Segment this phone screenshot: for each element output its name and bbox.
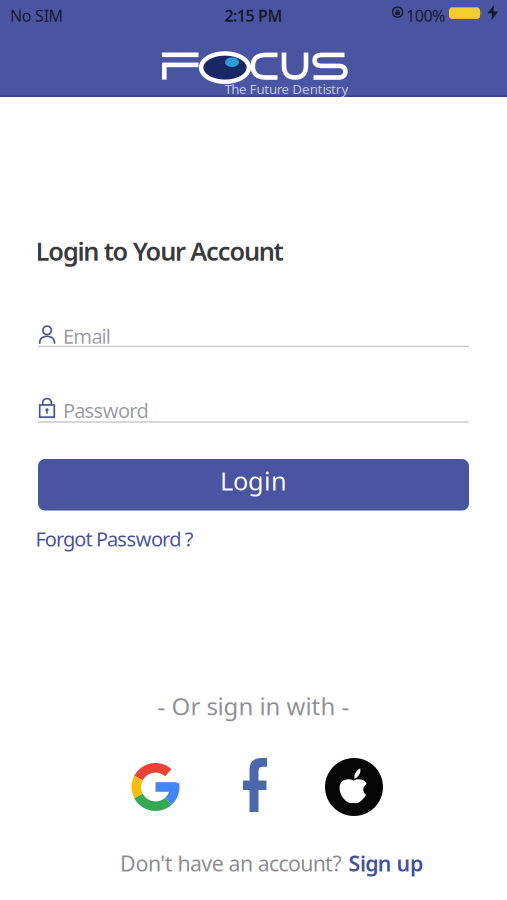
staticText: No SIM (10, 5, 63, 26)
staticText: The Future Dentistry (224, 80, 349, 98)
button[interactable]: Login (38, 459, 469, 510)
staticText: 100% (406, 5, 445, 26)
button[interactable]: Email (38, 317, 469, 346)
staticText: Forgot Password ? (35, 525, 194, 552)
staticText: Email (63, 323, 111, 349)
staticText: Login (220, 464, 287, 497)
staticText: Password (63, 397, 148, 424)
staticText: Sign up (348, 849, 423, 877)
button[interactable]: Password (38, 392, 469, 421)
staticText: Don't have an account? (120, 849, 341, 877)
staticText: - Or sign in with - (157, 690, 349, 722)
button[interactable]: Sign up (348, 849, 423, 877)
staticText: 2:15 PM (224, 5, 283, 26)
button[interactable] (131, 763, 179, 811)
button[interactable] (325, 758, 383, 816)
button[interactable]: Forgot Password ? (35, 525, 194, 552)
button[interactable] (242, 758, 267, 812)
staticText: Login to Your Account (35, 234, 283, 268)
